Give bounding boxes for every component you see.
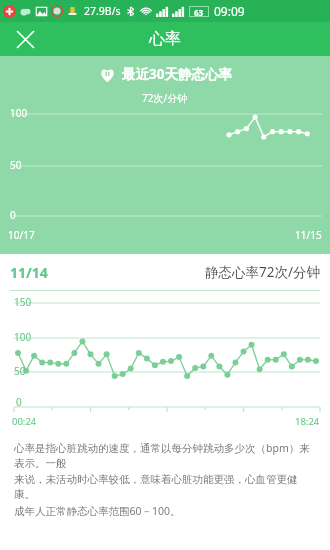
staticText: 心率 bbox=[149, 29, 181, 49]
button[interactable]: Close bbox=[10, 24, 40, 54]
staticText: 静态心率72次/分钟 bbox=[205, 263, 320, 281]
staticText: 0 bbox=[10, 208, 16, 222]
staticText: 50 bbox=[14, 364, 26, 378]
staticText: 11/15 bbox=[295, 228, 322, 242]
staticText: 心率是指心脏跳动的速度，通常以每分钟跳动多少次（bpm）来表示。一般 bbox=[14, 441, 318, 470]
staticText: 72次/分钟 bbox=[142, 91, 188, 105]
staticText: 成年人正常静态心率范围60－100。 bbox=[14, 504, 181, 518]
staticText: 100 bbox=[10, 106, 28, 120]
button[interactable]: 11/14 bbox=[10, 254, 320, 290]
staticText: 50 bbox=[10, 158, 22, 172]
staticText: 09:09 bbox=[214, 3, 245, 19]
staticText: 150 bbox=[14, 295, 32, 309]
staticText: 00:24 bbox=[12, 415, 37, 428]
staticText: 10/17 bbox=[8, 228, 35, 242]
staticText: 11/14 bbox=[10, 263, 48, 282]
staticText: 100 bbox=[14, 330, 32, 344]
staticText: 27.9B/s bbox=[84, 4, 121, 18]
staticText: 63 bbox=[194, 7, 204, 16]
staticText: 来说，未活动时心率较低，意味着心脏功能更强，心血管更健康。 bbox=[14, 473, 318, 501]
staticText: 18:24 bbox=[295, 415, 320, 428]
staticText: 最近30天静态心率 bbox=[122, 65, 232, 83]
staticText: 0 bbox=[16, 395, 22, 409]
